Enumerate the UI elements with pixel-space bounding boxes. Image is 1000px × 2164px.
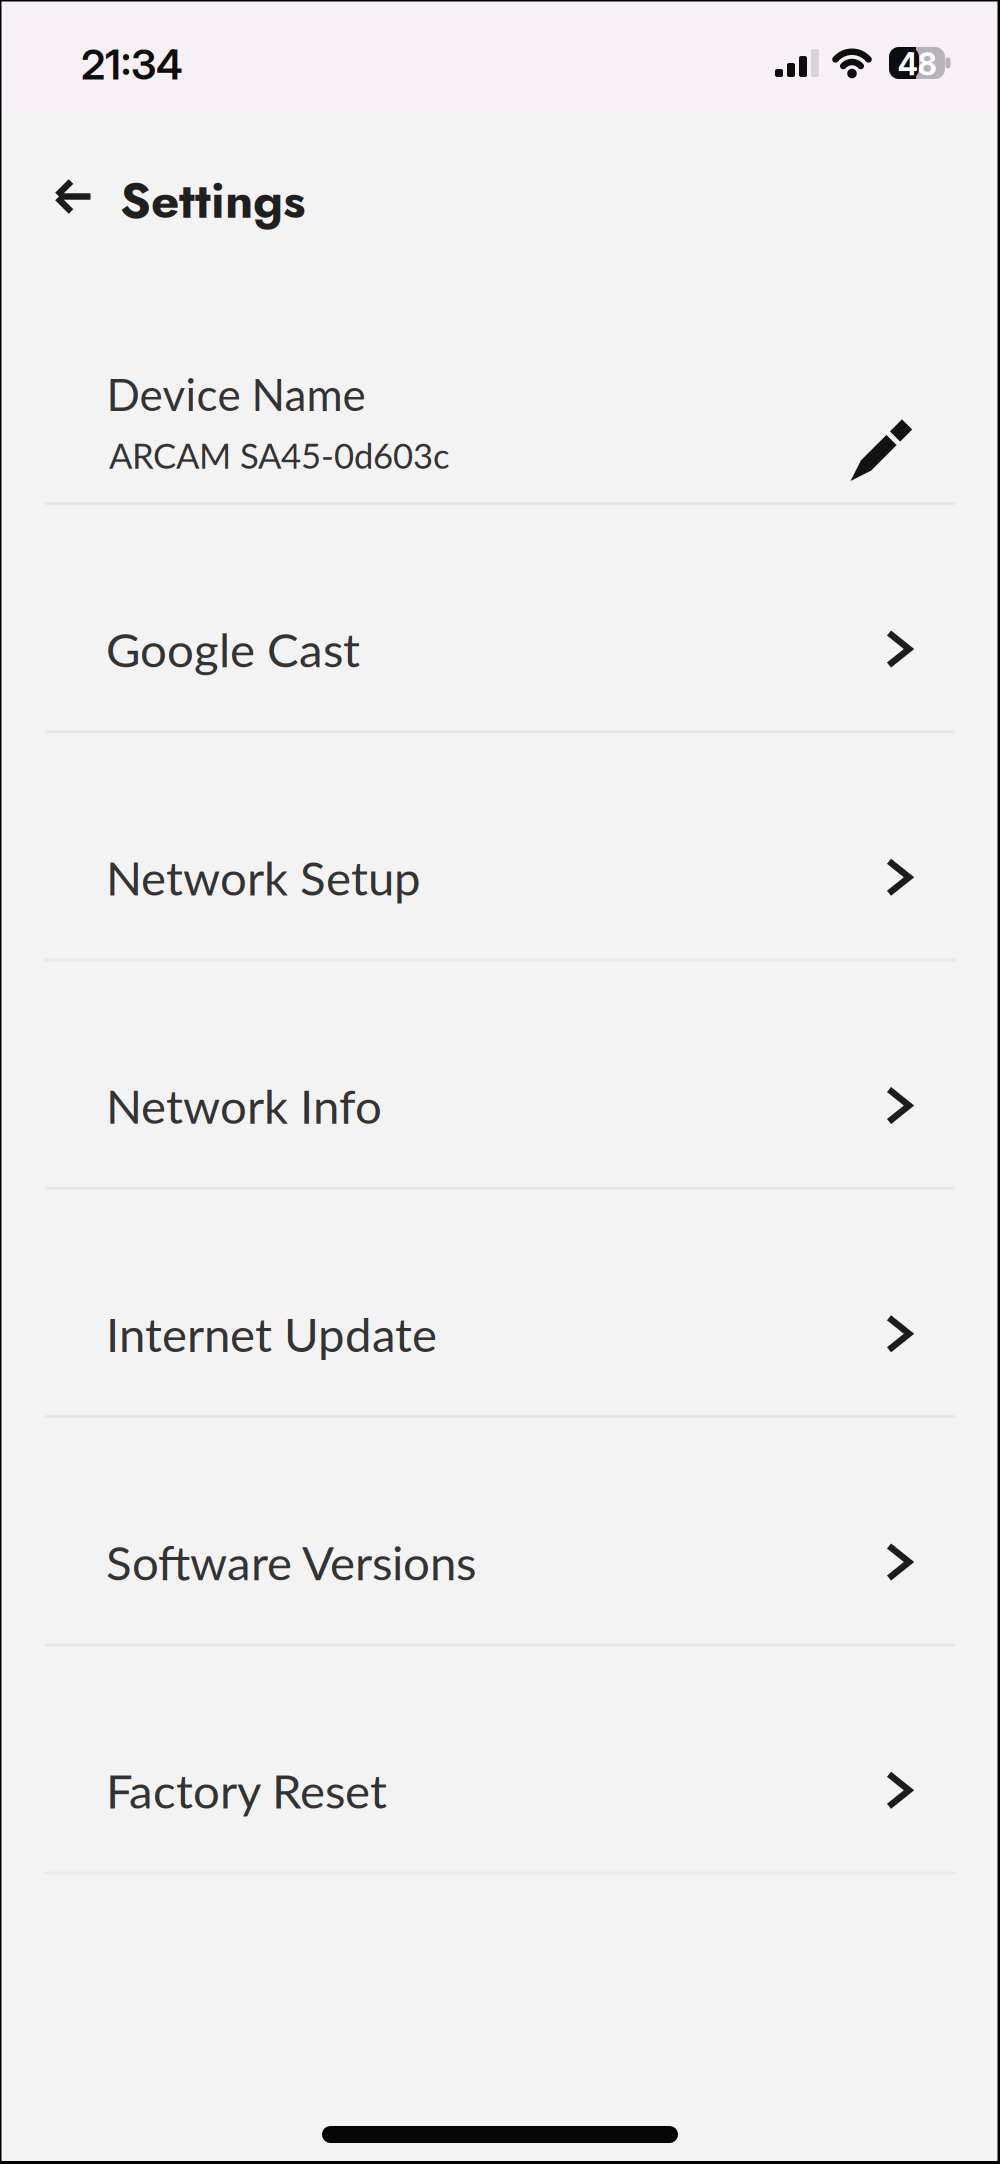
button[interactable]: Factory Reset (0, 1645, 1000, 1873)
staticText: Settings (120, 165, 305, 236)
button[interactable]: Edit device name (831, 403, 927, 499)
button[interactable]: Back (24, 148, 120, 244)
button[interactable]: Network Setup (0, 732, 1000, 960)
staticText: Network Info (106, 1077, 382, 1134)
staticText: 21:34 (81, 39, 183, 89)
staticText: Factory Reset (106, 1762, 387, 1819)
staticText: Software Versions (106, 1534, 476, 1590)
staticText: ARCAM SA45-0d603c (109, 435, 450, 476)
button[interactable]: Network Info (0, 960, 1000, 1188)
staticText: Google Cast (106, 621, 360, 677)
staticText: Internet Update (106, 1305, 437, 1362)
staticText: 48 (897, 45, 936, 82)
button[interactable]: Internet Update (0, 1188, 1000, 1416)
staticText: Network Setup (106, 849, 421, 906)
staticText: Device Name (106, 368, 365, 420)
button[interactable]: Software Versions (0, 1416, 1000, 1645)
button[interactable]: Google Cast (0, 503, 1000, 732)
